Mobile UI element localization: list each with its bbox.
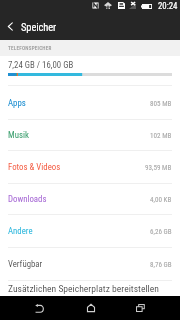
staticText: 6,26 GB (150, 227, 172, 235)
staticText: 93,59 MB (145, 163, 172, 171)
staticText: 102 MB (150, 131, 172, 139)
button[interactable]: Musik (0, 120, 180, 150)
button[interactable]: Andere (0, 215, 180, 247)
staticText: 805 MB (150, 99, 172, 107)
staticText: Speicher (21, 21, 57, 33)
staticText: 7,24 GB / 16,00 GB (8, 60, 74, 70)
staticText: Fotos & Videos (8, 162, 61, 172)
staticText: Musik (8, 130, 29, 140)
staticText: 4,00 KB (150, 195, 172, 203)
button[interactable]: Startbildschirm (70, 296, 111, 320)
staticText: Downloads (8, 194, 47, 204)
staticText: TELEFONSPEICHER (8, 45, 52, 51)
staticText: Apps (8, 98, 26, 108)
staticText: 20:24 (158, 1, 178, 11)
staticText: Verfügbar (8, 259, 43, 269)
staticText: Zusätzlichen Speicherplatz bereitstellen (8, 283, 159, 294)
staticText: Andere (8, 226, 33, 236)
button[interactable]: Zurück (18, 296, 60, 320)
button[interactable]: Letzte Apps (120, 296, 161, 320)
button[interactable]: Zusätzlichen Speicherplatz bereitstellen (0, 281, 180, 296)
button[interactable]: Verfügbar (0, 248, 180, 280)
button[interactable]: Fotos & Videos (0, 151, 180, 183)
button[interactable]: Downloads (0, 184, 180, 214)
button[interactable]: Apps (0, 86, 180, 119)
button[interactable]: Zurück (0, 13, 21, 40)
staticText: 8,76 GB (150, 260, 172, 268)
